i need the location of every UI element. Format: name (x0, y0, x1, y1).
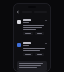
button[interactable] (23, 53, 33, 56)
button[interactable] (35, 32, 44, 35)
button[interactable] (35, 53, 44, 56)
button[interactable] (17, 61, 47, 71)
button[interactable] (14, 17, 50, 37)
button[interactable]: Back (16, 10, 20, 14)
button[interactable] (23, 32, 33, 35)
button[interactable] (14, 40, 50, 58)
